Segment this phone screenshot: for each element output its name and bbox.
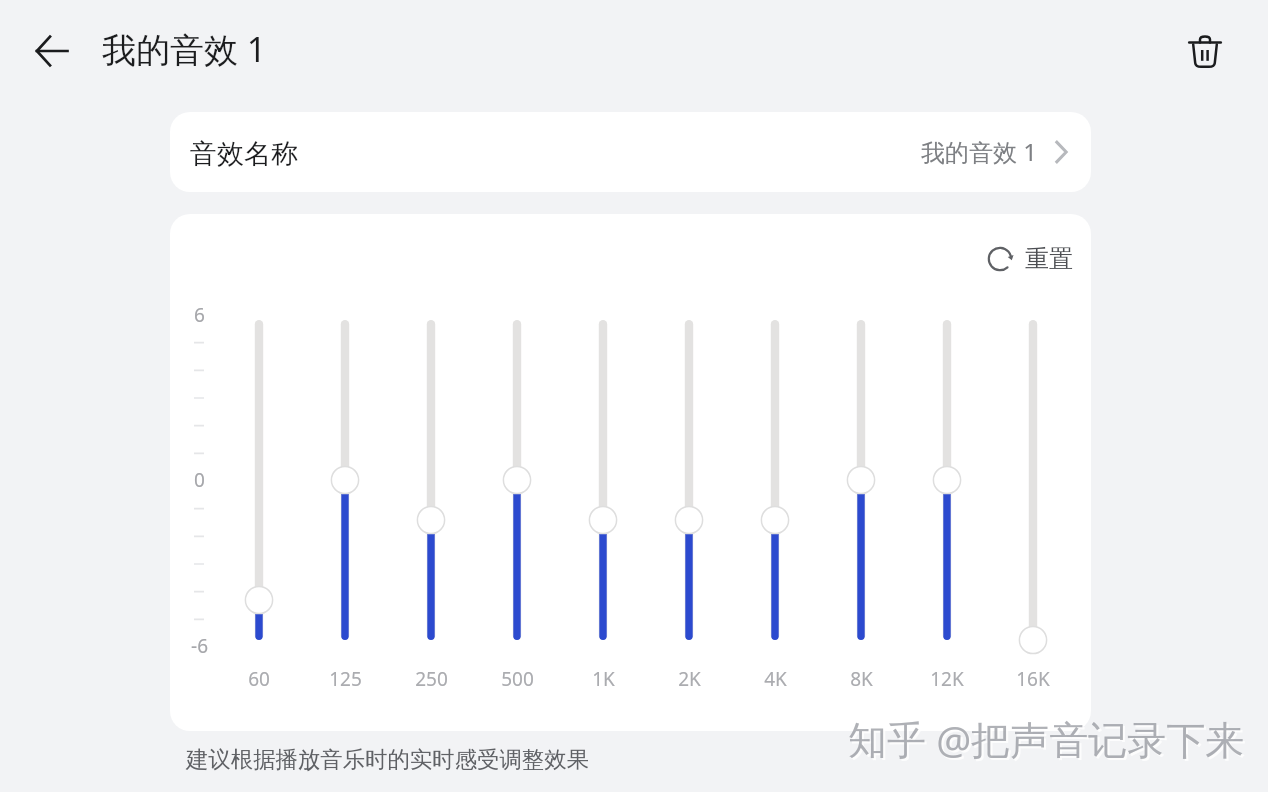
staticText: 6 (194, 302, 205, 328)
staticText: 2K (678, 666, 701, 692)
button[interactable]: 1K band level (573, 306, 633, 692)
button[interactable]: 4K band level (745, 306, 805, 692)
staticText: 4K (764, 666, 787, 692)
staticText: 知乎 @把声音记录下来 (850, 714, 1247, 767)
staticText: 知乎 @把声音记录下来 (848, 712, 1245, 765)
staticText: -6 (191, 633, 208, 659)
staticText: 250 (415, 666, 448, 692)
staticText: 我的音效 1 (921, 135, 1037, 168)
button[interactable]: Back (26, 25, 78, 77)
button[interactable]: 音效名称 (170, 112, 1091, 192)
button[interactable]: 12K band level (917, 306, 977, 692)
staticText: 我的音效 1 (102, 26, 267, 72)
staticText: 建议根据播放音乐时的实时感受调整效果 (186, 745, 590, 773)
staticText: 60 (248, 666, 270, 692)
staticText: 16K (1016, 666, 1050, 692)
staticText: 重置 (1025, 244, 1073, 274)
button[interactable]: 500 band level (487, 306, 547, 692)
button[interactable]: 16K band level (1003, 306, 1063, 692)
button[interactable]: 8K band level (831, 306, 891, 692)
staticText: 500 (501, 666, 534, 692)
button[interactable]: 250 band level (401, 306, 461, 692)
staticText: 8K (850, 666, 873, 692)
staticText: 12K (930, 666, 964, 692)
staticText: 1K (592, 666, 615, 692)
button[interactable]: Delete (1179, 25, 1231, 77)
button[interactable]: 125 band level (315, 306, 375, 692)
staticText: 音效名称 (190, 137, 298, 171)
button[interactable]: 60 band level (229, 306, 289, 692)
button[interactable]: 2K band level (659, 306, 719, 692)
staticText: 125 (329, 666, 362, 692)
button[interactable]: 重置 (978, 238, 1081, 280)
staticText: 0 (194, 467, 205, 493)
